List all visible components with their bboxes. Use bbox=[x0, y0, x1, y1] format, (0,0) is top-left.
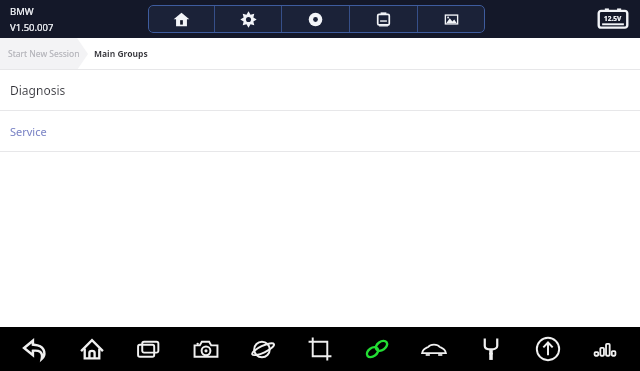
button[interactable]: Crop bbox=[298, 327, 342, 371]
staticText: Main Groups bbox=[94, 48, 148, 60]
button[interactable]: Browser bbox=[241, 327, 285, 371]
button[interactable]: Tools bbox=[469, 327, 513, 371]
staticText: Service bbox=[10, 124, 47, 139]
button[interactable]: Diagnosis bbox=[0, 70, 640, 110]
button[interactable]: Main Groups bbox=[88, 38, 156, 70]
button[interactable]: Camera bbox=[184, 327, 228, 371]
button[interactable]: Recent apps bbox=[127, 327, 171, 371]
button[interactable]: Print bbox=[350, 5, 417, 33]
staticText: Start New Session bbox=[8, 48, 80, 60]
button[interactable]: Service bbox=[0, 111, 640, 151]
button[interactable]: VCI connection bbox=[282, 5, 349, 33]
staticText: BMW bbox=[10, 5, 34, 18]
staticText: 12.5V bbox=[604, 14, 622, 23]
button[interactable]: Vehicle bbox=[412, 327, 456, 371]
button[interactable]: Home bbox=[70, 327, 114, 371]
button[interactable]: Back bbox=[13, 327, 57, 371]
button[interactable]: Start New Session bbox=[0, 38, 88, 70]
staticText: V1.50.007 bbox=[10, 21, 54, 34]
button[interactable]: Signal bbox=[583, 327, 627, 371]
staticText: Diagnosis bbox=[10, 82, 66, 98]
button[interactable]: Home bbox=[148, 5, 214, 33]
button[interactable]: Settings bbox=[215, 5, 281, 33]
button[interactable]: Screenshot bbox=[418, 5, 485, 33]
button[interactable]: Upload bbox=[526, 327, 570, 371]
button[interactable]: Battery 12.5 volts bbox=[596, 7, 630, 31]
button[interactable]: Connection bbox=[355, 327, 399, 371]
